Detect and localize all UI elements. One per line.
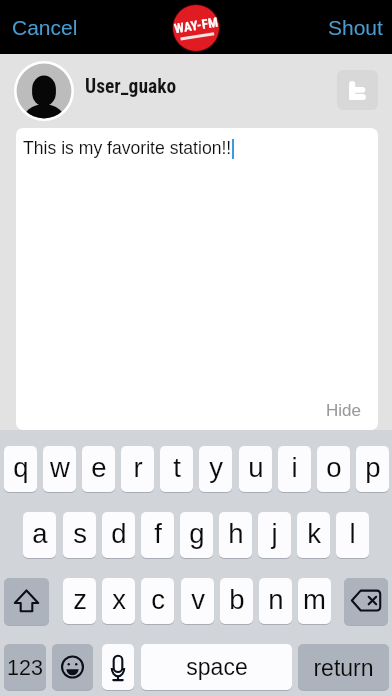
staticText: u <box>248 452 264 483</box>
staticText: j <box>271 518 278 549</box>
staticText: return <box>313 655 374 681</box>
button[interactable]: space <box>141 644 292 690</box>
button[interactable]: b <box>220 578 253 624</box>
button[interactable]: 123 <box>4 644 46 690</box>
staticText: Hide <box>326 401 361 420</box>
staticText: Shout <box>328 16 383 39</box>
staticText: m <box>303 584 326 615</box>
button[interactable]: h <box>219 512 252 558</box>
button[interactable]: i <box>278 446 311 492</box>
button[interactable]: z <box>63 578 96 624</box>
staticText: a <box>32 518 48 549</box>
button[interactable]: Emoji <box>52 644 93 690</box>
button[interactable]: Twitter <box>337 70 378 110</box>
staticText: This is my favorite station!! <box>23 138 232 158</box>
button[interactable]: t <box>160 446 193 492</box>
staticText: v <box>191 584 205 615</box>
button[interactable]: Shout <box>314 8 392 47</box>
button[interactable]: q <box>4 446 37 492</box>
staticText: WAY-FM <box>173 14 219 36</box>
button[interactable]: c <box>141 578 174 624</box>
staticText: w <box>50 452 70 483</box>
button[interactable]: u <box>239 446 272 492</box>
button[interactable]: Hide <box>314 393 378 430</box>
staticText: Cancel <box>12 16 78 39</box>
staticText: t <box>173 452 181 483</box>
staticText: b <box>229 584 245 615</box>
button[interactable]: l <box>336 512 369 558</box>
button[interactable]: f <box>141 512 174 558</box>
staticText: User_guako <box>85 75 177 98</box>
button[interactable]: r <box>121 446 154 492</box>
staticText: space <box>186 654 248 680</box>
button[interactable]: x <box>102 578 135 624</box>
staticText: i <box>291 452 298 483</box>
button[interactable]: Shift <box>4 578 49 625</box>
staticText: r <box>133 452 143 483</box>
staticText: c <box>151 584 165 615</box>
button[interactable]: j <box>258 512 291 558</box>
button[interactable]: a <box>23 512 56 558</box>
staticText: o <box>326 452 342 483</box>
button[interactable]: g <box>180 512 213 558</box>
button[interactable]: Cancel <box>0 8 92 47</box>
staticText: 123 <box>7 656 43 680</box>
button[interactable]: w <box>43 446 76 492</box>
staticText: z <box>73 584 87 615</box>
staticText: g <box>189 518 205 549</box>
staticText: e <box>91 452 107 483</box>
staticText: p <box>365 452 381 483</box>
button[interactable]: s <box>63 512 96 558</box>
button[interactable]: n <box>259 578 292 624</box>
button[interactable]: p <box>356 446 389 492</box>
button[interactable]: Delete <box>344 578 388 625</box>
button[interactable]: Profile photo <box>14 61 74 121</box>
staticText: h <box>228 518 244 549</box>
button[interactable]: v <box>181 578 214 624</box>
staticText: q <box>13 452 29 483</box>
staticText: d <box>111 518 127 549</box>
button[interactable]: o <box>317 446 350 492</box>
staticText: x <box>112 584 126 615</box>
staticText: y <box>209 452 223 483</box>
button[interactable]: return <box>298 644 389 690</box>
staticText: k <box>307 518 321 549</box>
button[interactable]: m <box>298 578 331 624</box>
staticText: s <box>73 518 87 549</box>
staticText: l <box>349 518 356 549</box>
staticText: n <box>268 584 284 615</box>
button[interactable]: k <box>297 512 330 558</box>
staticText: f <box>154 518 162 549</box>
button[interactable]: d <box>102 512 135 558</box>
button[interactable]: e <box>82 446 115 492</box>
button[interactable]: y <box>199 446 232 492</box>
button[interactable]: Dictation <box>102 644 134 690</box>
